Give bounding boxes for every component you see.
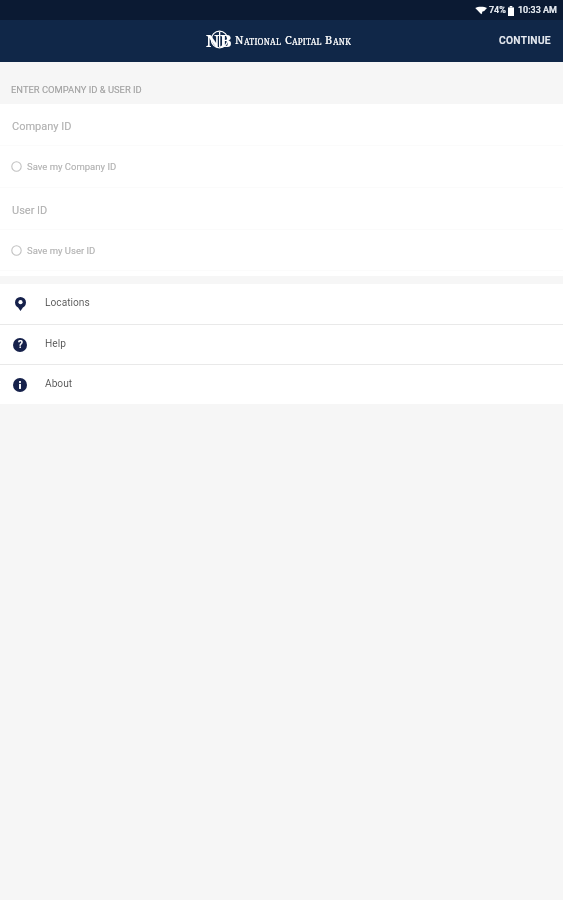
other: Locations	[15, 297, 26, 311]
other: About	[13, 378, 27, 392]
staticText: APITAL	[292, 36, 322, 47]
button[interactable]: User ID	[0, 188, 563, 229]
button[interactable]: Help	[0, 325, 563, 364]
staticText: N	[235, 32, 244, 47]
staticText: B	[325, 32, 333, 47]
button[interactable]: Save my User ID	[0, 230, 563, 270]
staticText: Save my Company ID	[27, 161, 117, 172]
staticText: Help	[45, 338, 66, 350]
staticText: B	[220, 29, 232, 49]
staticText: User ID	[12, 204, 48, 217]
staticText: ANK	[333, 36, 351, 47]
button[interactable]: Locations	[0, 284, 563, 324]
staticText: N	[206, 29, 220, 49]
staticText: ENTER COMPANY ID & USER ID	[11, 84, 142, 95]
staticText: Locations	[45, 297, 90, 309]
other: Help	[13, 338, 27, 352]
staticText: 10:33 AM	[518, 5, 557, 16]
button[interactable]: About	[0, 365, 563, 404]
staticText: 74%	[489, 5, 506, 16]
staticText: ATIONAL	[244, 36, 282, 47]
staticText: Save my User ID	[27, 245, 96, 256]
staticText: CONTINUE	[499, 35, 551, 47]
staticText: ?	[18, 339, 23, 351]
staticText: About	[45, 378, 73, 390]
button[interactable]: Company ID	[0, 104, 563, 145]
button[interactable]: Save my Company ID	[0, 146, 563, 187]
staticText: Company ID	[12, 120, 72, 133]
button[interactable]: CONTINUE	[485, 23, 563, 59]
staticText: C	[285, 32, 292, 47]
